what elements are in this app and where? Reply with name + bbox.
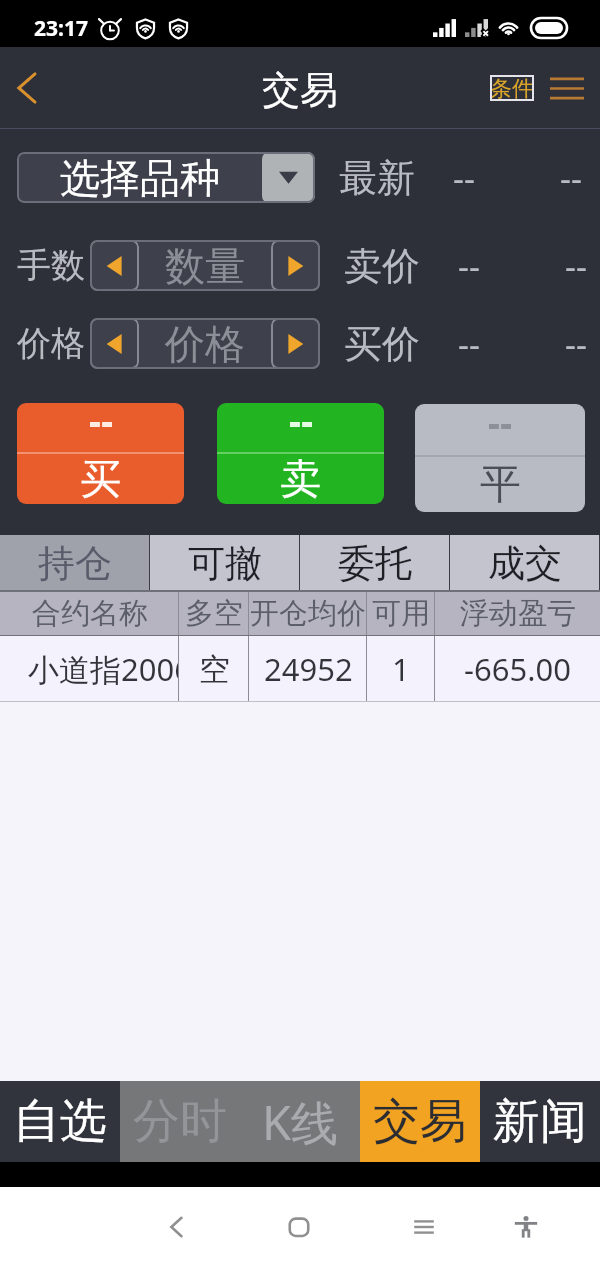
staticText: 多空 [185,595,243,632]
staticText: -- [565,243,587,289]
button[interactable]: 可撤 [150,535,300,591]
staticText: 持仓 [38,540,112,587]
staticText: -665.00 [464,648,571,690]
button[interactable]: 交易 [360,1081,480,1162]
staticText: 条件 [490,75,534,101]
button[interactable]: Decrease [90,318,139,369]
staticText: 自选 [13,1092,107,1151]
staticText: 交易 [262,66,338,114]
button[interactable]: 分时 [120,1081,240,1162]
staticText: -- [565,321,587,367]
button[interactable]: Back [150,1187,204,1267]
button[interactable]: 委托 [300,535,450,591]
button[interactable]: 卖 [217,403,384,504]
staticText: 开仓均价 [250,595,366,632]
staticText: K线 [262,1090,339,1154]
staticText: 卖 [280,454,321,504]
staticText: 空 [199,650,230,689]
button[interactable]: Home [272,1187,326,1267]
staticText: 分时 [133,1092,227,1151]
staticText: 选择品种 [60,153,220,203]
staticText: 最新 [339,154,415,202]
button[interactable]: 买 [17,403,184,504]
staticText: -- [560,155,582,201]
button[interactable]: Menu [544,60,590,116]
button[interactable]: Increase [271,318,320,369]
staticText: -- [458,321,480,367]
staticText: 买 [80,454,121,504]
button[interactable]: Increase [271,240,320,291]
staticText: 合约名称 [32,595,148,632]
button[interactable]: 持仓 [0,535,150,591]
button[interactable]: 成交 [450,535,600,591]
staticText: -- [453,155,475,201]
staticText: 平 [480,459,521,511]
button[interactable]: Back [3,47,48,129]
staticText: 数量 [165,241,245,291]
staticText: 24952 [264,648,353,690]
staticText: 新闻 [493,1092,587,1151]
staticText: 1 [392,648,410,690]
staticText: 可撤 [188,540,262,587]
staticText: 小道指2006 [28,648,179,690]
button[interactable]: Accessibility [499,1187,553,1267]
staticText: 成交 [488,540,562,587]
staticText: 可用 [372,595,430,632]
staticText: 价格 [17,322,85,365]
staticText: -- [458,243,480,289]
button[interactable]: Recents [397,1187,451,1267]
staticText: 卖价 [344,242,420,290]
staticText: 23:17 [34,14,88,43]
button[interactable]: 条件 [490,75,534,101]
staticText: 价格 [165,319,245,369]
button[interactable]: 选择品种 [17,152,315,203]
staticText: 浮动盈亏 [460,595,576,632]
button[interactable]: 自选 [0,1081,120,1162]
button[interactable]: 新闻 [480,1081,600,1162]
button[interactable]: 平 [415,404,585,512]
button[interactable]: K线 [240,1081,360,1162]
button[interactable]: Decrease [90,240,139,291]
staticText: 买价 [344,320,420,368]
staticText: 交易 [373,1092,467,1151]
staticText: 手数 [17,244,85,287]
staticText: 委托 [338,540,412,587]
